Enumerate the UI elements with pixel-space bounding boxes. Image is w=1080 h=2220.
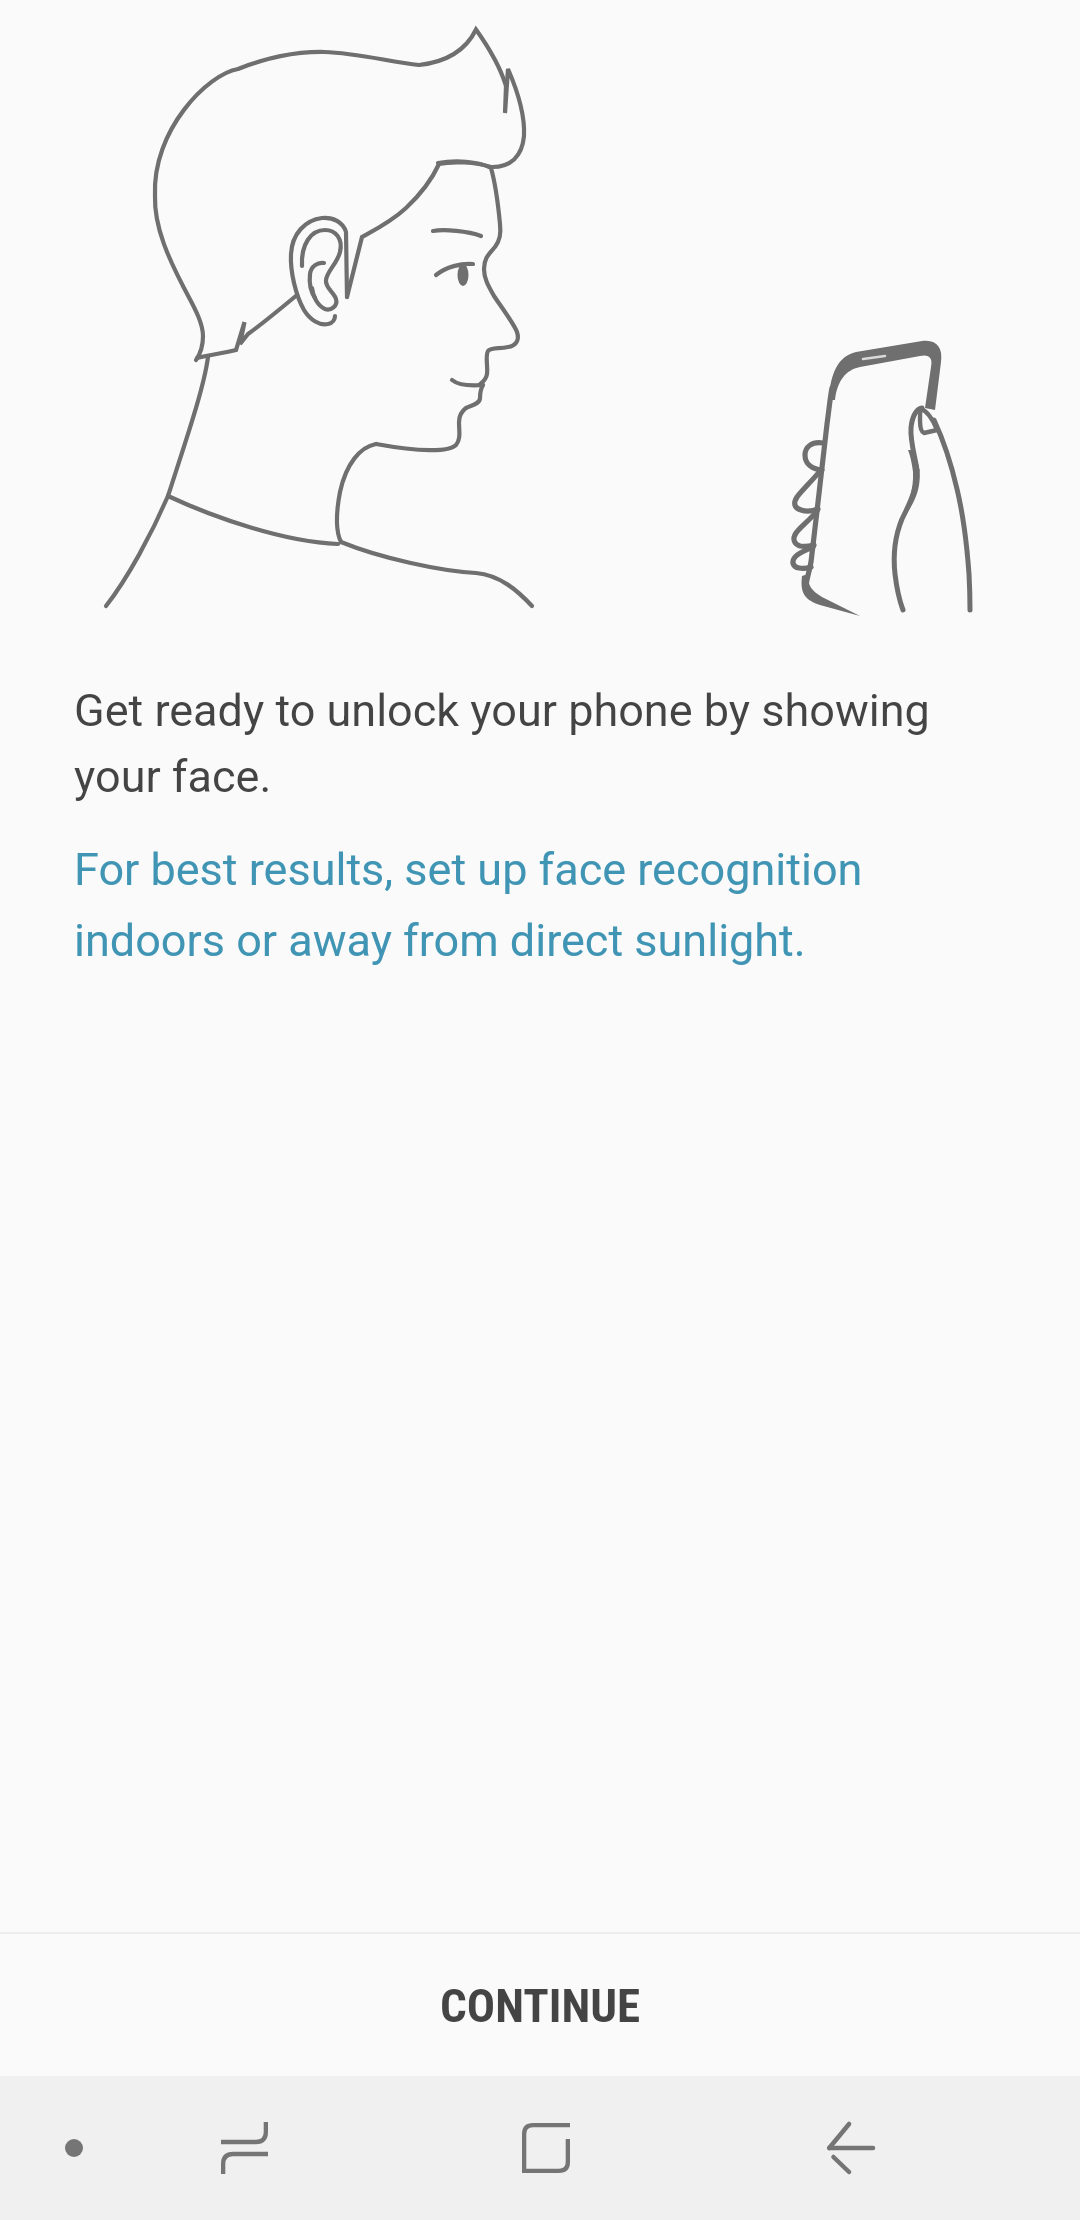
staticText: Get ready to unlock your phone by showin… [74, 674, 1020, 806]
button[interactable]: Recent apps [174, 2076, 314, 2220]
staticText: For best results, set up face recognitio… [74, 829, 1020, 971]
button[interactable]: Home [476, 2076, 616, 2220]
button[interactable]: Back [780, 2076, 920, 2220]
button[interactable]: Assistant [14, 2076, 134, 2220]
staticText: CONTINUE [440, 1978, 641, 2033]
button[interactable]: CONTINUE [0, 1934, 1080, 2076]
